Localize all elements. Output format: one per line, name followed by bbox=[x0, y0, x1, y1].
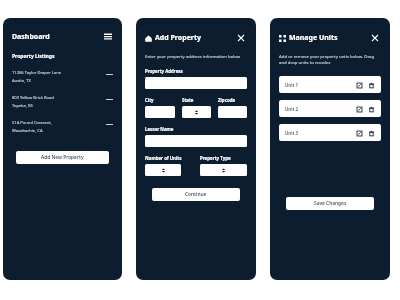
staticText: Manage Units bbox=[289, 33, 338, 43]
button[interactable]: Unit 1 bbox=[279, 76, 381, 93]
staticText: Property Listings bbox=[12, 53, 55, 60]
staticText: 11266 Taylor Draper Lane bbox=[12, 70, 62, 76]
button[interactable]: Unit 3 bbox=[279, 124, 381, 141]
staticText: Unit 3 bbox=[285, 130, 299, 136]
button[interactable]: 51A Pound Crescent, bbox=[12, 120, 113, 134]
button[interactable]: Delete bbox=[367, 81, 375, 89]
button[interactable]: Close bbox=[234, 31, 247, 44]
staticText: Enter your property address information … bbox=[145, 53, 241, 59]
staticText: Continue bbox=[185, 191, 207, 198]
staticText: Dashboard bbox=[12, 32, 50, 42]
button[interactable]: Edit bbox=[355, 129, 363, 137]
button[interactable]: 803 Yellow Brick Road bbox=[12, 95, 113, 109]
staticText: Property Address bbox=[145, 68, 183, 74]
staticText: Unit 2 bbox=[285, 106, 299, 112]
button[interactable] bbox=[218, 106, 247, 118]
staticText: 803 Yellow Brick Road bbox=[12, 95, 54, 101]
staticText: Unit 1 bbox=[285, 82, 299, 88]
button[interactable] bbox=[182, 106, 211, 118]
staticText: Add New Property bbox=[41, 154, 84, 161]
staticText: Save Changes bbox=[314, 200, 347, 207]
button[interactable] bbox=[200, 164, 247, 176]
button[interactable] bbox=[145, 106, 175, 118]
button[interactable]: Unit 2 bbox=[279, 100, 381, 117]
staticText: Waxahachie, CA bbox=[12, 128, 43, 134]
button[interactable]: Continue bbox=[152, 188, 240, 201]
staticText: Add or remove your property units below.… bbox=[279, 53, 381, 65]
staticText: Topeka, KS bbox=[12, 103, 33, 109]
staticText: Austin, TX bbox=[12, 78, 32, 84]
staticText: City bbox=[145, 97, 154, 103]
button[interactable]: Save Changes bbox=[286, 197, 374, 210]
staticText: Property Type bbox=[200, 155, 231, 161]
staticText: Zipcode bbox=[218, 97, 236, 103]
staticText: Number of Units bbox=[145, 155, 182, 161]
staticText: 51A Pound Crescent, bbox=[12, 120, 52, 126]
button[interactable] bbox=[145, 164, 181, 176]
button[interactable]: Edit bbox=[355, 105, 363, 113]
button[interactable] bbox=[145, 135, 247, 147]
button[interactable]: Delete bbox=[367, 129, 375, 137]
button[interactable]: Delete bbox=[367, 105, 375, 113]
staticText: State bbox=[182, 97, 194, 103]
staticText: Add Property bbox=[155, 33, 201, 43]
button[interactable]: Close bbox=[368, 31, 381, 44]
button[interactable]: Add New Property bbox=[16, 151, 109, 164]
button[interactable]: Menu bbox=[102, 31, 113, 42]
button[interactable] bbox=[145, 77, 247, 89]
button[interactable]: Edit bbox=[355, 81, 363, 89]
button[interactable]: 11266 Taylor Draper Lane bbox=[12, 70, 113, 84]
staticText: Lessor Name bbox=[145, 126, 174, 132]
